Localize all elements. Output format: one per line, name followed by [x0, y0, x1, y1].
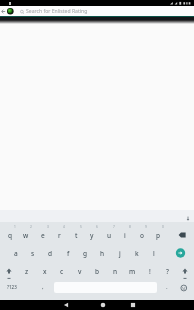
button[interactable]: t [68, 226, 84, 244]
staticText: w [23, 231, 29, 240]
button[interactable] [127, 300, 139, 310]
button[interactable] [177, 262, 193, 281]
staticText: p [156, 231, 161, 240]
button[interactable] [170, 244, 191, 262]
button[interactable]: j [112, 244, 128, 262]
button[interactable]: Search for Enlisted Rating [20, 7, 190, 16]
button[interactable]: k [129, 244, 145, 262]
staticText: , [42, 283, 44, 291]
staticText: l [153, 249, 155, 258]
button[interactable]: s [25, 244, 41, 262]
staticText: u [107, 231, 112, 240]
staticText: 0 [162, 225, 164, 229]
staticText: j [119, 249, 121, 258]
staticText: ?123 [7, 284, 17, 290]
staticText: ! [149, 267, 151, 276]
staticText: a [14, 249, 18, 258]
staticText: Search for Enlisted Rating [26, 8, 88, 15]
button[interactable] [0, 6, 7, 16]
staticText: 2 [30, 225, 32, 229]
button[interactable]: ? [159, 262, 175, 280]
staticText: g [83, 249, 88, 258]
staticText: ? [166, 267, 169, 276]
staticText: z [25, 267, 29, 276]
staticText: m [129, 267, 136, 276]
staticText: o [140, 231, 144, 240]
button[interactable]: e [35, 226, 51, 244]
staticText: b [95, 267, 100, 276]
button[interactable]: ?123 [2, 278, 21, 296]
staticText: i [124, 231, 126, 240]
button[interactable]: g [77, 244, 93, 262]
staticText: r [58, 231, 61, 240]
button[interactable]: v [72, 262, 88, 280]
button[interactable]: i [117, 226, 133, 244]
button[interactable]: m [124, 262, 140, 280]
button[interactable]: . [159, 278, 175, 296]
staticText: q [8, 231, 13, 240]
button[interactable]: a [8, 244, 24, 262]
staticText: n [113, 267, 118, 276]
staticText: c [60, 267, 64, 276]
staticText: f [67, 249, 70, 258]
button[interactable] [60, 300, 72, 310]
staticText: t [75, 231, 78, 240]
staticText: . [166, 283, 168, 291]
button[interactable]: q [2, 226, 18, 244]
staticText: 4 [63, 225, 65, 229]
staticText: 1 [14, 225, 16, 229]
staticText: x [43, 267, 47, 276]
staticText: 3 [47, 225, 49, 229]
button[interactable]: x [37, 262, 53, 280]
button[interactable]: u [101, 226, 117, 244]
button[interactable]: n [107, 262, 123, 280]
button[interactable]: b [89, 262, 105, 280]
button[interactable]: h [94, 244, 110, 262]
staticText: 8 [129, 225, 131, 229]
button[interactable]: z [19, 262, 35, 280]
button[interactable]: c [54, 262, 70, 280]
button[interactable]: w [18, 226, 34, 244]
button[interactable]: f [60, 244, 76, 262]
button[interactable] [183, 210, 194, 222]
staticText: v [78, 267, 82, 276]
staticText: h [100, 249, 105, 258]
button[interactable] [173, 226, 194, 244]
staticText: 7 [113, 225, 115, 229]
staticText: y [90, 231, 94, 240]
button[interactable]: r [51, 226, 67, 244]
button[interactable]: y [84, 226, 100, 244]
button[interactable]: p [150, 226, 166, 244]
staticText: 5 [80, 225, 82, 229]
button[interactable] [175, 278, 191, 296]
button[interactable]: , [35, 278, 51, 296]
button[interactable]: l [146, 244, 162, 262]
button[interactable]: d [42, 244, 58, 262]
staticText: 6 [96, 225, 98, 229]
staticText: 9 [145, 225, 147, 229]
button[interactable]: o [134, 226, 150, 244]
button[interactable] [1, 262, 17, 281]
button[interactable] [97, 300, 109, 310]
staticText: d [48, 249, 53, 258]
staticText: k [135, 249, 139, 258]
button[interactable]: ! [142, 262, 158, 280]
staticText: e [41, 231, 45, 240]
staticText: s [31, 249, 35, 258]
